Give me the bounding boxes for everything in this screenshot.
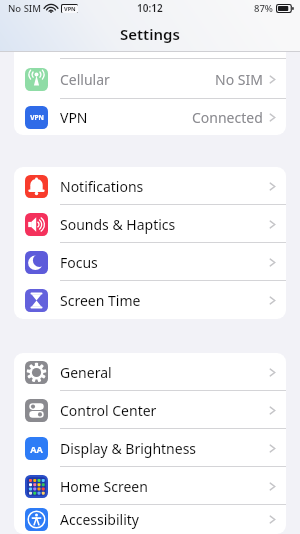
staticText: VPN: [64, 5, 76, 13]
staticText: Control Center: [60, 401, 157, 420]
staticText: General: [60, 363, 112, 382]
staticText: VPN: [60, 108, 88, 127]
staticText: AA: [30, 443, 43, 455]
button[interactable]: Sounds & Haptics: [14, 205, 286, 243]
staticText: 87%: [254, 2, 273, 15]
button[interactable]: Home Screen: [14, 467, 286, 505]
button[interactable]: Focus: [14, 243, 286, 281]
button[interactable]: Cellular: [14, 59, 286, 99]
other: Open: [269, 73, 276, 86]
button[interactable]: General: [14, 353, 286, 391]
button[interactable]: AA: [14, 429, 286, 467]
staticText: Screen Time: [60, 291, 141, 310]
staticText: Home Screen: [60, 477, 148, 496]
staticText: Connected: [192, 108, 263, 127]
staticText: Sounds & Haptics: [60, 215, 176, 234]
staticText: Accessibility: [60, 510, 139, 529]
other: Open: [269, 180, 276, 193]
other: Open: [269, 218, 276, 231]
staticText: Focus: [60, 253, 98, 272]
staticText: VPN: [30, 113, 44, 122]
staticText: No SIM: [215, 70, 263, 89]
staticText: Display & Brightness: [60, 439, 197, 458]
staticText: Notifications: [60, 177, 144, 196]
button[interactable]: VPN: [14, 99, 286, 135]
staticText: 10:12: [137, 1, 163, 15]
other: Open: [269, 404, 276, 417]
other: Open: [269, 442, 276, 455]
button[interactable]: Screen Time: [14, 281, 286, 319]
staticText: No SIM: [8, 2, 41, 15]
other: Open: [269, 256, 276, 269]
staticText: Cellular: [60, 70, 110, 89]
other: Open: [269, 480, 276, 493]
staticText: Settings: [120, 24, 180, 44]
other: Open: [269, 513, 276, 526]
button[interactable]: Accessibility: [14, 505, 286, 534]
button[interactable]: Control Center: [14, 391, 286, 429]
other: Open: [269, 294, 276, 307]
other: Open: [269, 111, 276, 124]
button[interactable]: Notifications: [14, 167, 286, 205]
other: Open: [269, 366, 276, 379]
